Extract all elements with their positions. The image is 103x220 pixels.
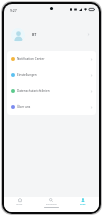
button[interactable]: Datenschutzrichtlinien (7, 83, 96, 99)
staticText: Über uns (17, 105, 31, 109)
staticText: BT (32, 32, 37, 37)
button[interactable]: Home (4, 197, 35, 207)
staticText: 9:27 (10, 8, 17, 13)
button[interactable]: Einstellungen (7, 67, 96, 83)
other: Open profile (87, 33, 90, 36)
staticText: Profil (80, 203, 86, 206)
staticText: Home (16, 203, 23, 206)
button[interactable]: Notification Center (7, 51, 96, 67)
button[interactable]: Profil (67, 197, 99, 207)
staticText: Notification Center (17, 57, 45, 61)
staticText: Datenschutzrichtlinien (17, 89, 50, 93)
button[interactable]: Über uns (7, 99, 96, 115)
button[interactable]: Entdecken (35, 197, 67, 207)
staticText: Einstellungen (17, 73, 37, 77)
button[interactable]: BT (4, 21, 99, 48)
staticText: Entdecken (46, 203, 57, 206)
